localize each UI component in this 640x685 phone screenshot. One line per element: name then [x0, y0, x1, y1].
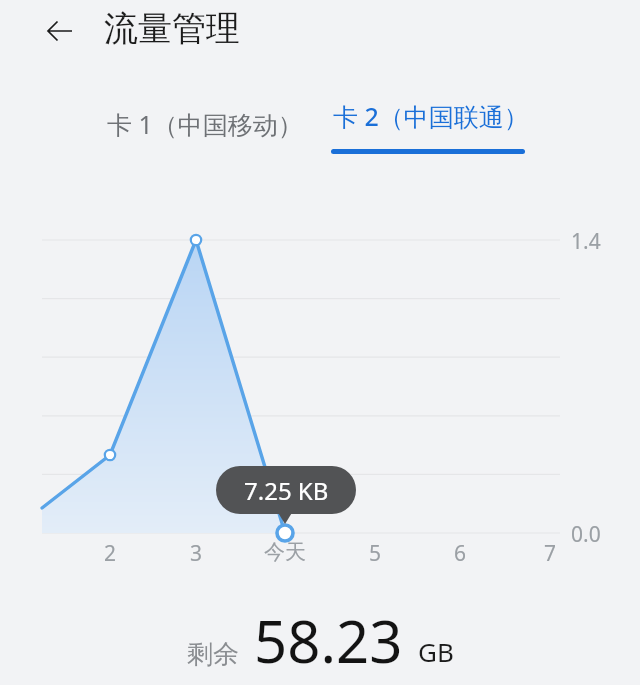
button[interactable]: Back [33, 4, 87, 58]
button[interactable]: 卡 2（中国联通） [331, 99, 531, 154]
staticText: 今天 [245, 539, 325, 565]
button[interactable]: 卡 1（中国移动） [96, 99, 314, 149]
staticText: 卡 1（中国移动） [107, 107, 303, 141]
staticText: 卡 2（中国联通） [333, 99, 529, 133]
staticText: 0.0 [571, 520, 601, 549]
staticText: 7.25 KB [244, 474, 329, 507]
staticText: 7 [510, 539, 590, 568]
staticText: GB [418, 634, 454, 669]
staticText: 2 [70, 539, 150, 568]
staticText: 剩余 [187, 638, 239, 671]
staticText: 3 [156, 539, 236, 568]
staticText: 5 [335, 539, 415, 568]
staticText: 58.23 [239, 601, 418, 680]
staticText: 1.4 [571, 227, 601, 256]
staticText: 6 [420, 539, 500, 568]
staticText: 流量管理 [104, 7, 240, 50]
